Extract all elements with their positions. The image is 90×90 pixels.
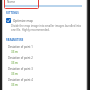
button[interactable]: Optimize map	[6, 18, 33, 23]
staticText: SETTINGS	[6, 11, 19, 15]
staticText: 33 m	[11, 72, 18, 76]
staticText: 33 m	[11, 61, 18, 65]
staticText: PARAMETERS	[6, 38, 24, 42]
staticText: Deviation of point 4	[8, 78, 33, 82]
staticText: 33 m	[11, 50, 18, 54]
staticText: Optimize map	[13, 19, 33, 23]
staticText: 33 m	[11, 83, 18, 87]
button[interactable]: Deviation of point 2	[8, 56, 90, 65]
button[interactable]: Deviation of point 3	[8, 67, 90, 76]
staticText: Name	[7, 0, 16, 4]
button[interactable]: Deviation of point 4	[8, 78, 90, 87]
button[interactable]: Deviation of point 1	[8, 45, 90, 54]
button[interactable]: Name	[4, 0, 39, 9]
staticText: Deviation of point 3	[8, 67, 33, 71]
staticText: Divide the map image into smaller images…	[11, 24, 82, 32]
staticText: Deviation of point 1	[8, 45, 33, 49]
staticText: Deviation of point 2	[8, 56, 33, 60]
